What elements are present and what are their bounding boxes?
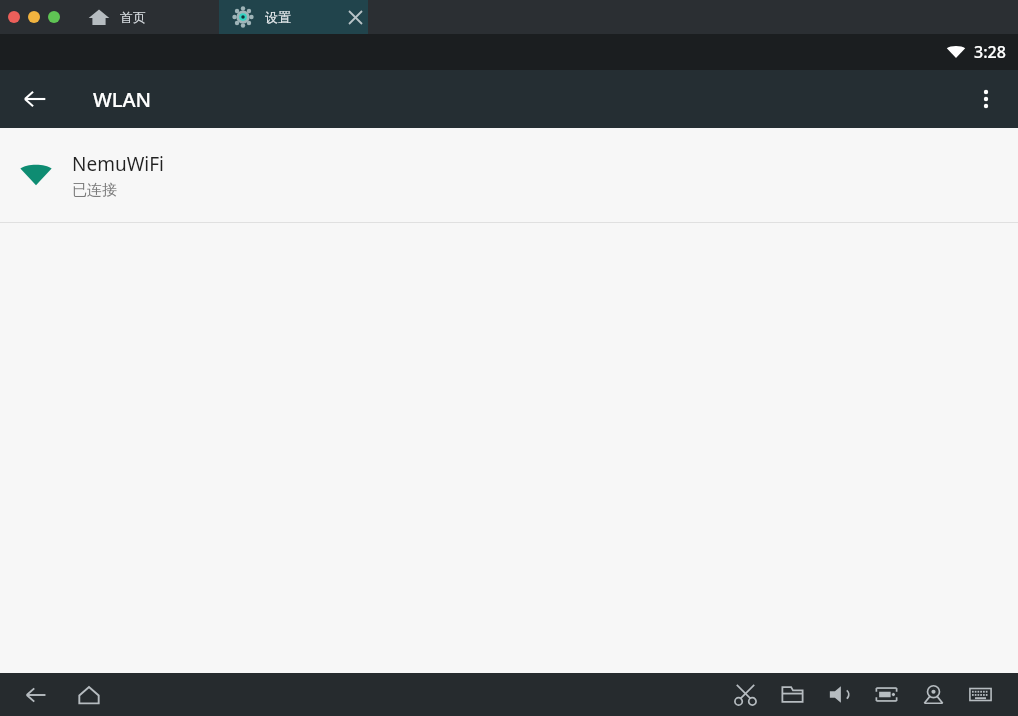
button[interactable]: Location: [910, 673, 957, 716]
button[interactable]: Screenshot: [722, 673, 769, 716]
button[interactable]: 首页: [78, 0, 218, 34]
button[interactable]: More options: [962, 75, 1010, 123]
button[interactable]: Home: [65, 673, 113, 716]
button[interactable]: Install APK: [863, 673, 910, 716]
button[interactable]: Back: [11, 75, 59, 123]
button[interactable]: Keyboard: [957, 673, 1004, 716]
staticText: 设置: [265, 9, 291, 25]
button[interactable]: 设置: [219, 0, 368, 34]
staticText: 已连接: [72, 181, 117, 200]
button[interactable]: Shared folder: [769, 673, 816, 716]
button[interactable]: Window control: [8, 11, 20, 23]
staticText: NemuWiFi: [72, 151, 164, 177]
button[interactable]: Window control: [48, 11, 60, 23]
button[interactable]: Volume: [816, 673, 863, 716]
staticText: WLAN: [93, 86, 152, 113]
button[interactable]: Close tab: [342, 4, 368, 30]
button[interactable]: Window control: [28, 11, 40, 23]
staticText: 3:28: [974, 41, 1006, 63]
button[interactable]: NemuWiFi: [0, 128, 1018, 222]
staticText: 首页: [120, 9, 146, 25]
button[interactable]: Back: [12, 673, 60, 716]
